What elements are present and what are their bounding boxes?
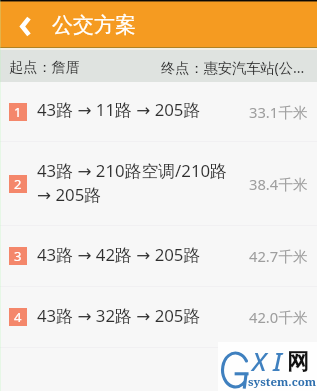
button[interactable]: 4 bbox=[0, 287, 317, 347]
staticText: 42.0千米 bbox=[249, 307, 308, 327]
button[interactable]: 终点：惠安汽车站(公... bbox=[161, 58, 313, 77]
button[interactable]: 起点：詹厝 bbox=[9, 58, 159, 76]
button[interactable]: Back bbox=[0, 2, 48, 47]
staticText: 3 bbox=[14, 247, 22, 265]
staticText: X bbox=[252, 343, 267, 378]
button[interactable]: 2 bbox=[0, 142, 317, 225]
staticText: 1 bbox=[14, 103, 22, 121]
staticText: 2 bbox=[14, 175, 22, 193]
staticText: 43路 → 11路 → 205路 bbox=[37, 98, 201, 121]
staticText: I bbox=[273, 343, 282, 378]
staticText: 公交方案 bbox=[52, 12, 136, 38]
staticText: 4 bbox=[14, 308, 22, 326]
staticText: system.com bbox=[248, 374, 317, 390]
staticText: 43路 → 210路空调/210路 → 205路 bbox=[37, 159, 237, 206]
staticText: 38.4千米 bbox=[249, 174, 308, 194]
staticText: 43路 → 32路 → 205路 bbox=[37, 304, 201, 327]
button[interactable]: 3 bbox=[0, 226, 317, 286]
button[interactable]: 1 bbox=[0, 82, 317, 141]
staticText: 43路 → 42路 → 205路 bbox=[37, 243, 201, 266]
staticText: 网 bbox=[287, 348, 309, 376]
staticText: 42.7千米 bbox=[249, 246, 308, 266]
staticText: 33.1千米 bbox=[249, 102, 308, 122]
